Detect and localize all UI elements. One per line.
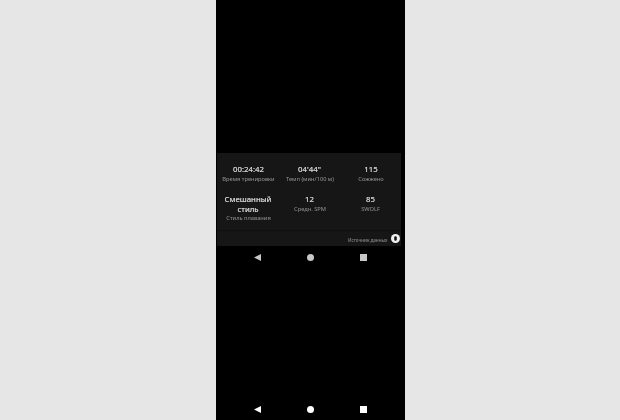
button[interactable]: Back: [242, 398, 272, 420]
button[interactable]: Back: [242, 246, 272, 268]
button[interactable]: Recent apps: [348, 246, 378, 268]
button[interactable]: Источник данных: [217, 231, 401, 246]
staticText: Средн. SPM: [294, 205, 326, 213]
staticText: Источник данных: [348, 237, 388, 243]
button[interactable]: 85: [340, 194, 401, 213]
staticText: 115: [364, 164, 378, 175]
button[interactable]: 00:24:42: [217, 164, 279, 183]
staticText: SWOLF: [361, 205, 380, 213]
button[interactable]: 04'44": [279, 164, 340, 183]
staticText: Сожжено: [358, 175, 384, 183]
staticText: Темп (мин/100 м): [286, 175, 334, 183]
staticText: Стиль плавания: [226, 214, 271, 222]
staticText: Смешанный стиль: [217, 194, 279, 214]
button[interactable]: 12: [279, 194, 340, 213]
button[interactable]: Recent apps: [348, 398, 378, 420]
button[interactable]: Home: [295, 246, 325, 268]
button[interactable]: Смешанный стиль: [217, 194, 279, 222]
staticText: 00:24:42: [233, 164, 264, 175]
staticText: 85: [366, 194, 375, 205]
staticText: 12: [305, 194, 314, 205]
button[interactable]: 115: [340, 164, 401, 183]
staticText: Время тренировки: [222, 175, 275, 183]
button[interactable]: Home: [295, 398, 325, 420]
staticText: 04'44": [298, 164, 321, 175]
